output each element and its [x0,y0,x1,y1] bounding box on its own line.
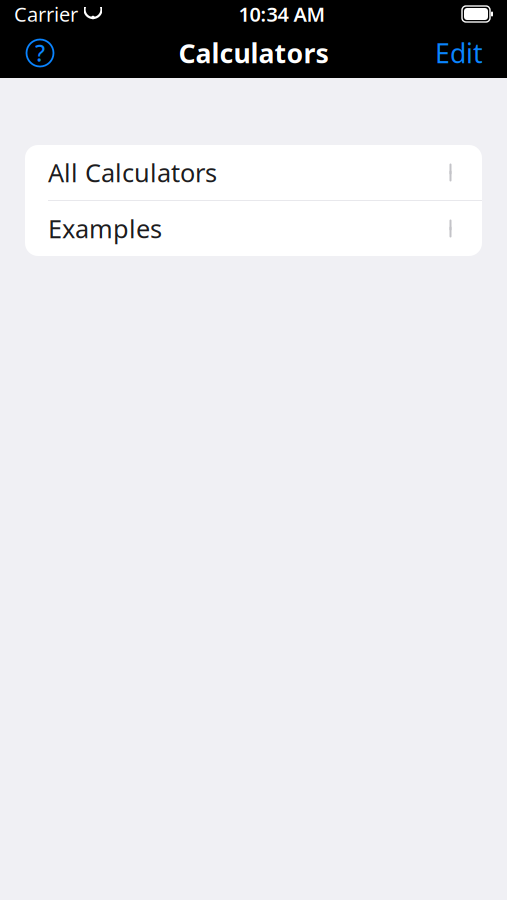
button[interactable]: Help [18,31,62,75]
staticText: All Calculators [48,156,217,189]
button[interactable]: Edit [429,31,489,75]
staticText: ? [35,38,45,68]
staticText: Calculators [178,35,328,71]
staticText: Carrier [14,1,78,27]
button[interactable]: All Calculators [25,145,482,200]
button[interactable]: Examples [25,201,482,256]
staticText: Examples [48,212,162,245]
staticText: Edit [435,35,483,71]
staticText: 10:34 AM [238,1,325,27]
